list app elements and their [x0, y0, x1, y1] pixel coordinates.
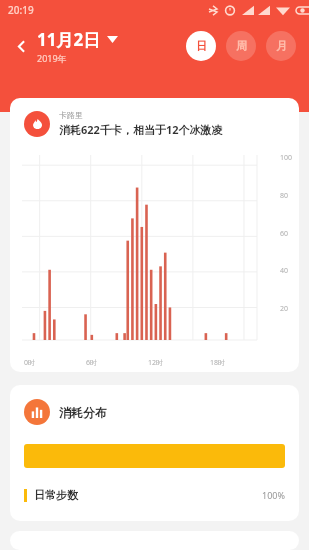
staticText: 80	[280, 191, 289, 201]
staticText: 2019年	[37, 52, 67, 64]
staticText: 100%	[262, 489, 285, 501]
staticText: 18时	[210, 358, 226, 368]
staticText: 11月2日	[37, 28, 101, 51]
staticText: 卡路里	[59, 110, 83, 120]
button[interactable]: Back	[8, 33, 34, 59]
staticText: 12时	[148, 358, 164, 368]
button[interactable]: 消耗分布	[10, 385, 299, 521]
staticText: 60	[280, 229, 289, 239]
button[interactable]: 卡路里	[10, 98, 299, 372]
staticText: 20:19	[8, 3, 34, 17]
staticText: 20	[280, 304, 289, 314]
button[interactable]: 日	[186, 31, 216, 61]
staticText: 6时	[86, 358, 98, 368]
staticText: 消耗分布	[59, 405, 107, 420]
button[interactable]: 11月2日	[37, 28, 118, 51]
staticText: 0时	[24, 358, 36, 368]
staticText: 月	[276, 39, 287, 53]
staticText: 100	[280, 153, 293, 163]
staticText: 40	[280, 266, 289, 276]
button[interactable]: 周	[226, 31, 256, 61]
button[interactable]: 月	[266, 31, 296, 61]
staticText: 消耗622千卡，相当于12个冰激凌	[59, 122, 223, 137]
staticText: 日	[196, 39, 207, 53]
staticText: 日常步数	[34, 488, 78, 502]
staticText: 周	[236, 39, 247, 53]
